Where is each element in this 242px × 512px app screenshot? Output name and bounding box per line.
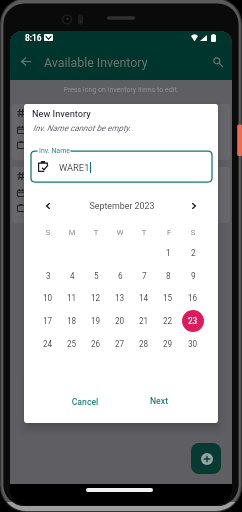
staticText: 22 <box>163 316 173 326</box>
staticText: 3 <box>46 271 51 281</box>
staticText: 5 <box>94 271 99 281</box>
staticText: Available Inventory <box>44 55 148 70</box>
staticText: 28 <box>139 339 149 349</box>
staticText: S <box>181 228 205 240</box>
staticText: 24 <box>43 339 53 349</box>
staticText: 27 <box>115 339 125 349</box>
button[interactable]: 14 <box>132 286 156 309</box>
button[interactable]: 1 <box>156 241 180 264</box>
staticText: 13 <box>115 293 125 303</box>
staticText: Inv. Name cannot be empty. <box>33 123 131 133</box>
staticText: September 2023 <box>62 201 182 215</box>
button[interactable]: Back <box>17 53 34 70</box>
staticText: 6 <box>118 271 123 281</box>
staticText: 19 <box>91 316 101 326</box>
button[interactable]: 2 <box>181 241 205 264</box>
staticText: T <box>132 228 156 240</box>
button[interactable]: 30 <box>181 332 205 355</box>
staticText: 29 <box>163 339 173 349</box>
staticText: M <box>60 228 84 240</box>
button[interactable]: 13 <box>108 286 132 309</box>
staticText: T <box>84 228 108 240</box>
staticText: 7 <box>142 271 147 281</box>
staticText: 10 <box>43 293 53 303</box>
button[interactable]: Next month <box>183 195 205 217</box>
staticText: W <box>108 228 132 240</box>
staticText: 11 <box>67 293 77 303</box>
staticText: 17 <box>43 316 53 326</box>
button[interactable]: 22 <box>156 309 180 332</box>
staticText: 26 <box>91 339 101 349</box>
staticText: 14 <box>139 293 149 303</box>
staticText: 2 <box>191 248 196 258</box>
staticText: 1 <box>166 248 171 258</box>
button[interactable]: 17 <box>36 309 60 332</box>
staticText: New Inventory <box>32 108 91 119</box>
staticText: F <box>157 228 181 240</box>
button[interactable]: Cancel <box>69 392 101 409</box>
staticText: 20 <box>115 316 125 326</box>
staticText: 9 <box>191 271 196 281</box>
staticText: S <box>36 228 60 240</box>
button[interactable]: 11 <box>60 286 84 309</box>
button[interactable]: 15 <box>156 286 180 309</box>
button[interactable]: 29 <box>156 332 180 355</box>
button[interactable]: Previous month <box>37 195 59 217</box>
button[interactable]: 19 <box>84 309 108 332</box>
button[interactable]: 16 <box>181 286 205 309</box>
button[interactable]: 10 <box>36 286 60 309</box>
button[interactable]: 18 <box>60 309 84 332</box>
staticText: Press long on inventory items to edit. <box>21 86 221 97</box>
staticText: 8 <box>166 271 171 281</box>
staticText: 15 <box>163 293 173 303</box>
button[interactable]: 21 <box>132 309 156 332</box>
button[interactable]: 6 <box>108 264 132 287</box>
staticText: 23 <box>188 316 198 326</box>
button[interactable]: 27 <box>108 332 132 355</box>
staticText: 18 <box>67 316 77 326</box>
staticText: 30 <box>188 339 198 349</box>
button[interactable]: 7 <box>132 264 156 287</box>
button[interactable]: Add inventory <box>191 443 221 474</box>
button[interactable]: 5 <box>84 264 108 287</box>
staticText: Inv. Name <box>39 147 71 155</box>
button[interactable] <box>12 104 230 160</box>
staticText: Next <box>148 396 170 410</box>
button[interactable]: Next <box>148 391 170 408</box>
button[interactable]: 23 <box>181 309 205 332</box>
button[interactable]: 28 <box>132 332 156 355</box>
button[interactable]: 3 <box>36 264 60 287</box>
button[interactable]: 4 <box>60 264 84 287</box>
staticText: 12 <box>91 293 101 303</box>
staticText: 21 <box>139 316 149 326</box>
button[interactable]: 12 <box>84 286 108 309</box>
button[interactable]: Search <box>209 53 226 70</box>
staticText: 4 <box>70 271 75 281</box>
staticText: 16 <box>188 293 198 303</box>
button[interactable]: 26 <box>84 332 108 355</box>
button[interactable]: 9 <box>181 264 205 287</box>
button[interactable]: 20 <box>108 309 132 332</box>
staticText: 25 <box>67 339 77 349</box>
staticText: 8:16 <box>25 33 42 43</box>
button[interactable] <box>12 167 230 223</box>
button[interactable]: 25 <box>60 332 84 355</box>
staticText: Cancel <box>69 397 101 411</box>
button[interactable]: 24 <box>36 332 60 355</box>
button[interactable]: 8 <box>156 264 180 287</box>
staticText: WARE1 <box>59 162 90 173</box>
